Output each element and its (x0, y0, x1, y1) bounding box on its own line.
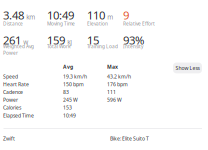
staticText: Power (3, 96, 18, 103)
staticText: 596 W (107, 96, 122, 103)
staticText: Total Work (47, 43, 71, 49)
staticText: Training Load (87, 43, 118, 49)
staticText: Bike: Elite Suito T (110, 135, 149, 142)
staticText: Show Less (175, 64, 199, 71)
staticText: 9 (123, 7, 129, 23)
staticText: kJ (67, 38, 72, 46)
staticText: 10:49 (47, 7, 74, 23)
staticText: 3.48 (3, 7, 24, 23)
staticText: Zwift (3, 135, 15, 142)
staticText: w (23, 38, 28, 46)
staticText: Cadence (3, 89, 23, 95)
button[interactable]: Heart Rate (0, 0, 208, 88)
staticText: Heart Rate (3, 81, 29, 88)
staticText: 111 (107, 89, 116, 95)
staticText: Max (107, 63, 118, 70)
button[interactable]: Elapsed Time (0, 0, 208, 119)
staticText: 43.2 km/h (107, 73, 131, 80)
staticText: Distance (3, 20, 23, 27)
staticText: 93% (123, 32, 144, 48)
staticText: 83 (63, 89, 69, 95)
button[interactable]: Zwift (0, 0, 208, 142)
staticText: 150 bpm (63, 81, 84, 88)
staticText: Calories (3, 104, 21, 111)
button[interactable]: Cadence (0, 0, 208, 95)
staticText: km (26, 13, 35, 21)
staticText: 10:49 (63, 112, 76, 119)
staticText: 15 (87, 32, 99, 48)
staticText: m (107, 13, 113, 21)
button[interactable]: Show Less (173, 62, 202, 73)
button[interactable]: Calories (0, 0, 208, 111)
staticText: 176 bpm (107, 81, 128, 88)
staticText: 261 (3, 32, 21, 48)
staticText: 159 (47, 32, 65, 48)
staticText: 110 (87, 7, 105, 23)
button[interactable]: Speed (0, 0, 208, 80)
staticText: 153 (63, 104, 72, 111)
staticText: 19.3 km/h (63, 73, 87, 80)
staticText: 245 W (63, 96, 78, 103)
staticText: Speed (3, 73, 18, 80)
staticText: Avg (63, 63, 73, 70)
staticText: Intensity (123, 43, 143, 49)
staticText: Elevation (87, 20, 108, 27)
button[interactable]: Power (0, 0, 208, 103)
staticText: Relative Effort (123, 20, 155, 27)
staticText: Moving Time (47, 20, 75, 27)
staticText: Elapsed Time (3, 112, 34, 119)
staticText: Weighted Avg Power (3, 43, 34, 56)
